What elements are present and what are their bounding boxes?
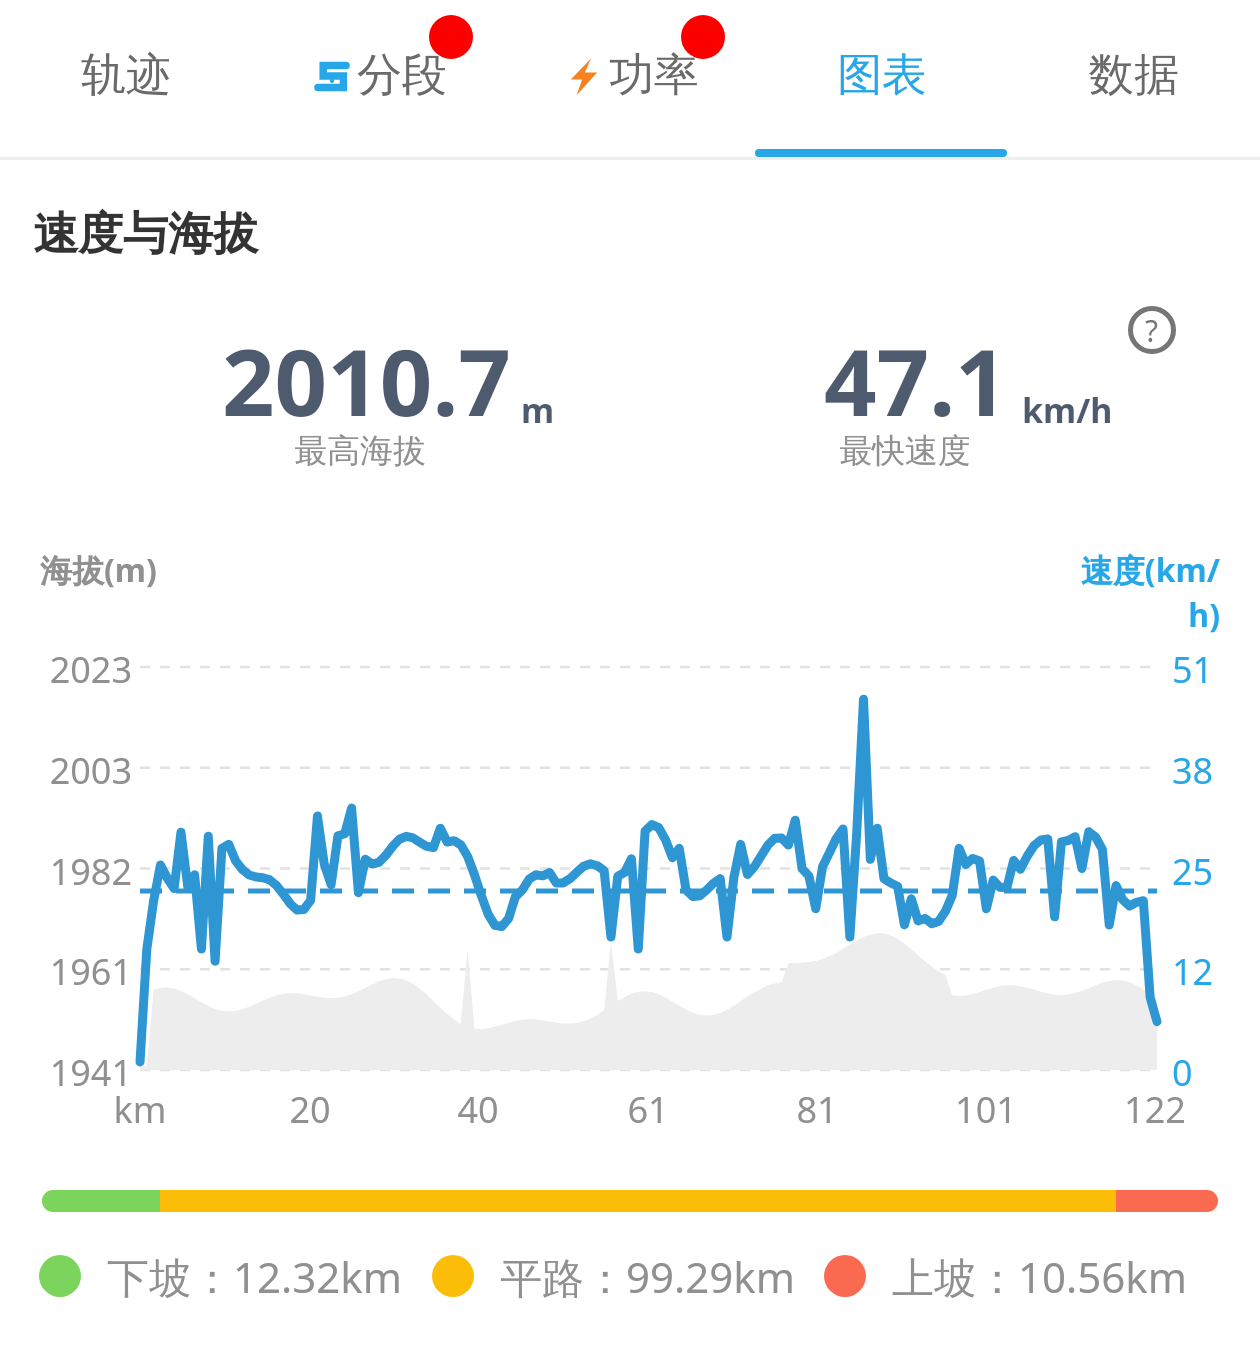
- staticText: m: [521, 387, 555, 433]
- staticText: 2010.7: [222, 318, 511, 443]
- staticText: 1941: [36, 1048, 132, 1097]
- staticText: 38: [1172, 746, 1214, 795]
- staticText: 1961: [36, 947, 132, 996]
- staticText: 40: [418, 1085, 538, 1134]
- staticText: 海拔(m): [40, 548, 157, 592]
- staticText: 20: [250, 1085, 370, 1134]
- staticText: 速度与海拔: [33, 206, 258, 263]
- staticText: 1982: [36, 847, 132, 896]
- staticText: 101: [926, 1085, 1046, 1134]
- staticText: 功率: [609, 47, 699, 104]
- button[interactable]: 轨迹: [0, 0, 252, 150]
- staticText: 图表: [837, 47, 927, 104]
- staticText: 81: [757, 1085, 877, 1134]
- staticText: km: [80, 1085, 200, 1134]
- button[interactable]: 平路：99.29km: [432, 1248, 796, 1304]
- staticText: 25: [1172, 847, 1214, 896]
- staticText: 122: [1095, 1085, 1215, 1134]
- staticText: 平路：99.29km: [500, 1248, 796, 1304]
- staticText: 下坡：12.32km: [107, 1248, 403, 1304]
- staticText: 12: [1172, 947, 1214, 996]
- staticText: 51: [1172, 645, 1214, 694]
- button[interactable]: 下坡：12.32km: [39, 1248, 403, 1304]
- staticText: 2023: [36, 645, 132, 694]
- button[interactable]: 图表: [756, 0, 1008, 150]
- staticText: 轨迹: [81, 47, 171, 104]
- staticText: 61: [588, 1085, 708, 1134]
- staticText: 2003: [36, 746, 132, 795]
- staticText: 最快速度: [770, 430, 1040, 472]
- staticText: 分段: [357, 47, 447, 104]
- staticText: 0: [1172, 1048, 1193, 1097]
- staticText: 47.1: [824, 318, 1008, 443]
- button[interactable]: 上坡：10.56km: [824, 1248, 1188, 1304]
- staticText: ?: [1145, 310, 1159, 351]
- button[interactable]: 帮助: [1128, 306, 1176, 354]
- staticText: km/h: [1022, 387, 1113, 433]
- staticText: 速度(km/h): [1060, 548, 1220, 637]
- button[interactable]: 功率: [504, 0, 756, 150]
- button[interactable]: 分段: [252, 0, 504, 150]
- staticText: 上坡：10.56km: [892, 1248, 1188, 1304]
- staticText: 数据: [1089, 47, 1179, 104]
- staticText: 最高海拔: [225, 430, 495, 472]
- button[interactable]: 数据: [1008, 0, 1260, 150]
